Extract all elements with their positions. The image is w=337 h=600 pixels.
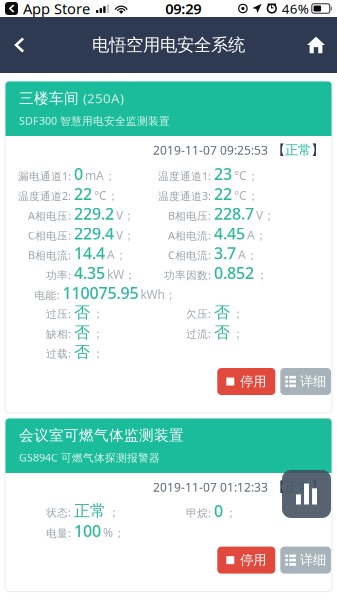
staticText: 2019-11-07 09:25:53 [153, 142, 268, 158]
button[interactable]: Back [0, 17, 38, 73]
staticText: B相电压: [168, 208, 211, 223]
staticText: A相电流: [168, 228, 211, 242]
staticText: 46% [282, 0, 309, 17]
staticText: 4.45 [214, 223, 245, 244]
staticText: 停用 [240, 373, 266, 390]
staticText: 甲烷: [186, 506, 211, 520]
staticText: 过载: [46, 346, 71, 361]
staticText: kW； [107, 266, 136, 282]
button[interactable]: 停用 [217, 547, 275, 574]
button[interactable]: 详细 [280, 547, 331, 574]
staticText: 3.7 [214, 242, 236, 264]
staticText: 110075.95 [62, 282, 138, 303]
staticText: 100 [74, 520, 101, 541]
staticText: °C； [234, 167, 259, 183]
staticText: 22 [74, 183, 92, 204]
button[interactable]: 详细 [280, 368, 331, 395]
staticText: ； [225, 506, 237, 520]
staticText: V； [256, 207, 275, 223]
staticText: ； [232, 326, 244, 341]
staticText: A； [247, 227, 267, 243]
staticText: 否 [214, 303, 230, 322]
staticText: ； [232, 306, 244, 321]
staticText: A； [238, 247, 258, 263]
staticText: V； [116, 207, 135, 223]
staticText: 否 [74, 342, 90, 362]
staticText: B相电流: [28, 248, 71, 262]
staticText: C相电压: [28, 228, 71, 242]
staticText: 温度通道1: [158, 169, 211, 183]
staticText: 否 [214, 322, 230, 342]
staticText: 22 [214, 183, 232, 204]
staticText: 229.2 [74, 203, 114, 224]
staticText: ； [92, 326, 104, 341]
staticText: 状态: [46, 505, 71, 519]
staticText: ； [256, 268, 268, 282]
staticText: 228.7 [214, 203, 254, 224]
staticText: ； [92, 306, 104, 321]
staticText: 功率因数: [164, 268, 211, 282]
button[interactable]: Home [295, 17, 337, 73]
staticText: A相电压: [28, 208, 71, 223]
staticText: 0.852 [214, 262, 254, 283]
staticText: 正常 [285, 142, 311, 158]
staticText: 4.35 [74, 262, 105, 283]
staticText: °C； [234, 187, 259, 203]
staticText: 0 [214, 500, 223, 521]
staticText: 23 [214, 163, 232, 184]
staticText: 09:29 [165, 0, 201, 18]
staticText: 详细 [300, 373, 326, 390]
staticText: ； [92, 346, 104, 361]
staticText: 229.4 [74, 223, 114, 244]
staticText: 详细 [300, 552, 326, 568]
staticText: App Store [19, 0, 90, 18]
staticText: 电能: [34, 288, 59, 302]
staticText: 正常 [74, 501, 106, 521]
staticText: V； [116, 227, 135, 243]
staticText: °C； [94, 187, 119, 203]
staticText: 【 [268, 142, 285, 158]
staticText: 】 [311, 142, 324, 158]
staticText: GS894C 可燃气体探测报警器 [19, 450, 160, 465]
staticText: 正常 [285, 479, 311, 495]
staticText: 0 [74, 163, 83, 184]
staticText: 【 [268, 479, 285, 495]
staticText: 会议室可燃气体监测装置 [19, 426, 184, 444]
staticText: 三楼车间 [19, 89, 79, 107]
button[interactable]: 停用 [217, 368, 275, 395]
staticText: 2019-11-07 01:12:33 [153, 479, 268, 495]
staticText: 停用 [240, 552, 266, 568]
staticText: C相电流: [168, 248, 211, 262]
staticText: SDF300 智慧用电安全监测装置 [19, 113, 170, 128]
staticText: 缺相: [46, 327, 71, 341]
staticText: (250A) [83, 89, 124, 107]
staticText: 温度通道2: [18, 189, 71, 203]
staticText: 温度通道3: [158, 189, 211, 203]
staticText: 功率: [46, 268, 71, 282]
button[interactable]: Charts [282, 470, 331, 518]
staticText: ； [108, 505, 120, 520]
staticText: 】 [311, 479, 324, 495]
staticText: A； [107, 247, 127, 263]
staticText: kWh； [140, 286, 176, 302]
staticText: 电悟空用电安全系统 [92, 34, 245, 56]
staticText: 否 [74, 322, 90, 342]
staticText: 过压: [46, 307, 71, 321]
staticText: 否 [74, 303, 90, 322]
staticText: 漏电通道1: [18, 169, 71, 183]
staticText: mA； [85, 167, 116, 183]
staticText: 欠压: [186, 307, 211, 321]
staticText: 14.4 [74, 242, 105, 264]
staticText: %； [103, 524, 125, 540]
staticText: 电量: [46, 526, 71, 540]
staticText: 过流: [186, 327, 211, 341]
